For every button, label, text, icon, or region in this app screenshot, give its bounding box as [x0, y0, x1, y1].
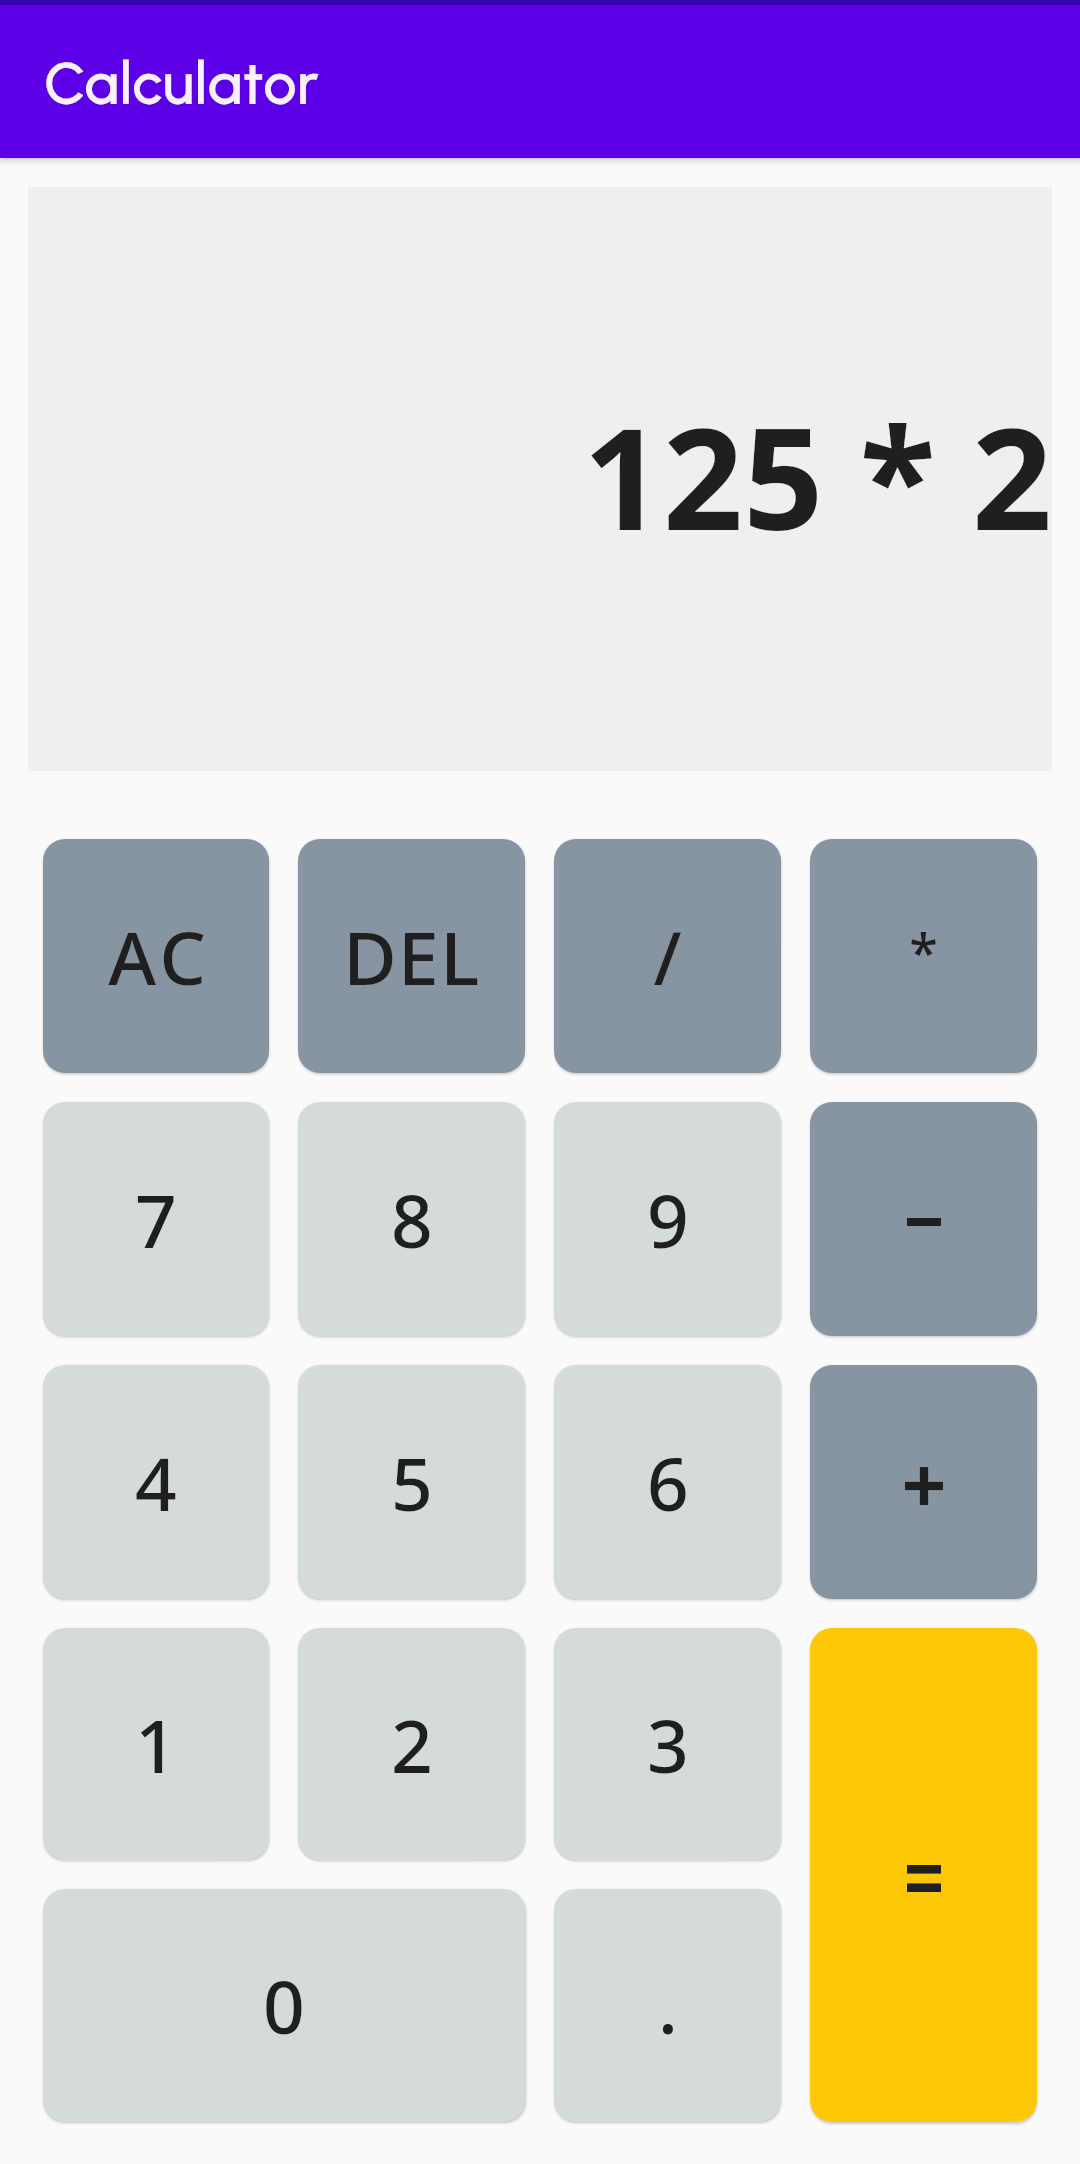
staticText: 7: [135, 1170, 177, 1269]
button[interactable]: All clear: [43, 839, 269, 1073]
staticText: AC: [108, 907, 211, 1006]
staticText: 1: [135, 1695, 177, 1794]
button[interactable]: 4: [43, 1365, 269, 1599]
staticText: 5: [391, 1433, 433, 1532]
button[interactable]: Decimal point: [554, 1889, 781, 2122]
button[interactable]: 2: [298, 1628, 525, 1860]
staticText: .: [658, 1956, 678, 2055]
staticText: 3: [647, 1695, 689, 1794]
button[interactable]: Calculator: [0, 5, 1080, 158]
staticText: 8: [391, 1170, 433, 1269]
staticText: /: [653, 907, 682, 1006]
button[interactable]: 1: [43, 1628, 269, 1860]
button[interactable]: Equals: [810, 1628, 1037, 2122]
button[interactable]: 6: [554, 1365, 781, 1599]
staticText: 125 * 2: [582, 380, 1052, 571]
staticText: 0: [263, 1956, 305, 2055]
button[interactable]: 8: [298, 1102, 525, 1336]
button[interactable]: Multiply: [810, 839, 1037, 1073]
staticText: DEL: [343, 907, 481, 1006]
button[interactable]: Plus: [810, 1365, 1037, 1599]
button[interactable]: Expression display: [28, 187, 1052, 771]
button[interactable]: Divide: [554, 839, 781, 1073]
button[interactable]: 0: [43, 1889, 525, 2122]
button[interactable]: 5: [298, 1365, 525, 1599]
staticText: 4: [135, 1433, 177, 1532]
button[interactable]: 9: [554, 1102, 781, 1336]
button[interactable]: Minus: [810, 1102, 1037, 1336]
button[interactable]: 3: [554, 1628, 781, 1860]
staticText: *: [909, 916, 938, 987]
staticText: 9: [647, 1170, 689, 1269]
staticText: 2: [391, 1695, 433, 1794]
staticText: Calculator: [45, 50, 321, 117]
button[interactable]: Delete: [298, 839, 525, 1073]
button[interactable]: 7: [43, 1102, 269, 1336]
staticText: 6: [647, 1433, 689, 1532]
